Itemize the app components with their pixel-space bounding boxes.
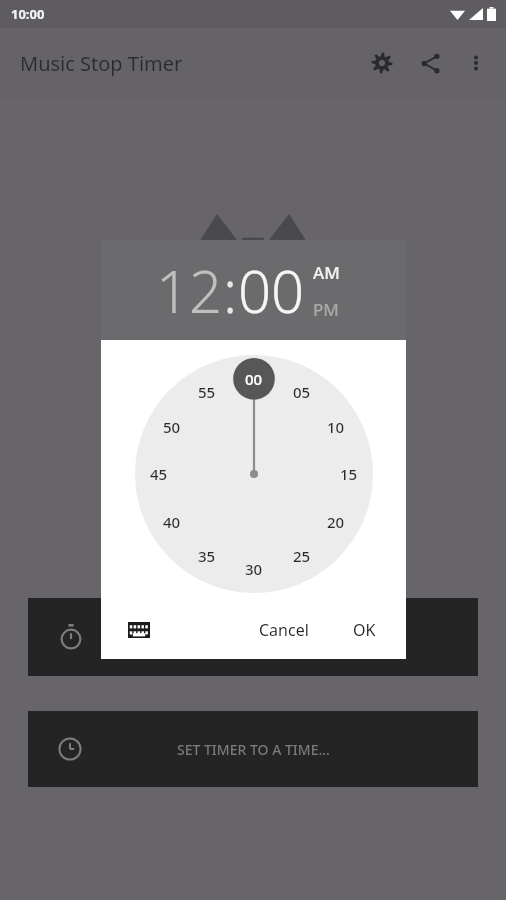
staticText: 10:00 [11,5,45,23]
staticText: 40 [163,512,181,532]
staticText: 45 [150,464,168,484]
button[interactable]: AM [313,261,340,284]
button[interactable]: Share [406,39,454,87]
staticText: 55 [198,382,216,402]
staticText: Cancel [259,619,309,641]
staticText: 50 [163,417,181,437]
staticText: 25 [293,546,311,566]
staticText: 00 [245,369,263,389]
staticText: OK [353,619,376,641]
staticText: 30 [245,559,263,579]
staticText: : [223,251,238,330]
staticText: 05 [293,382,311,402]
button[interactable]: SET TIMER TO A TIME... [28,711,478,787]
button[interactable]: Settings [358,39,406,87]
button[interactable]: More options [454,41,498,85]
staticText: 20 [327,512,345,532]
staticText: Set timer for ... seconds... [0,518,506,538]
staticText: SET TIMER TO SECONDS... [168,628,339,647]
button[interactable]: Cancel [247,611,321,649]
button[interactable]: 12 [156,251,223,330]
staticText: 35 [198,546,216,566]
staticText: 10 [327,417,345,437]
button[interactable]: PM [313,298,339,321]
staticText: Music Stop Timer [20,50,183,77]
button[interactable]: SET TIMER TO SECONDS... [28,598,478,676]
staticText: 15 [340,464,358,484]
staticText: SET TIMER TO A TIME... [177,740,330,759]
button[interactable]: 00 [238,251,305,330]
button[interactable]: Switch to text input [119,610,159,650]
button[interactable]: OK [341,611,388,649]
